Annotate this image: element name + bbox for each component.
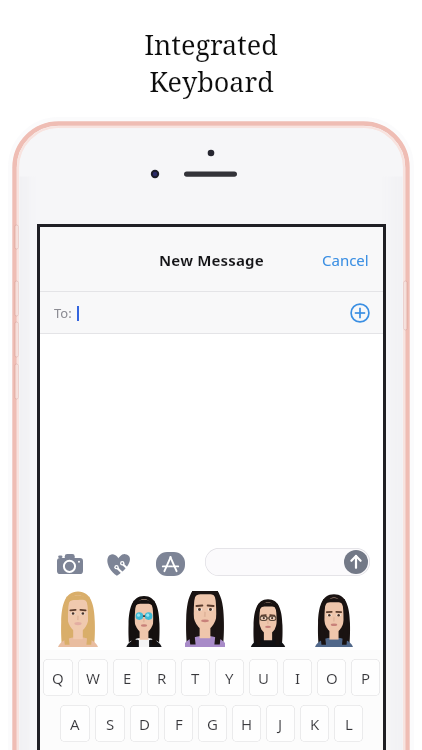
staticText: Integrated <box>144 26 278 63</box>
button[interactable]: E <box>113 659 142 696</box>
button[interactable]: H <box>232 705 261 742</box>
staticText: E <box>123 668 132 688</box>
button[interactable]: Camera <box>57 554 83 574</box>
button[interactable]: L <box>334 705 363 742</box>
staticText: U <box>258 668 269 688</box>
button[interactable]: App Store <box>156 552 185 576</box>
button[interactable] <box>124 591 164 647</box>
button[interactable] <box>248 591 288 647</box>
button[interactable]: Q <box>43 659 73 696</box>
button[interactable] <box>58 591 98 647</box>
button[interactable]: K <box>300 705 329 742</box>
staticText: T <box>191 668 200 688</box>
button[interactable]: Send <box>344 550 368 574</box>
button[interactable]: J <box>266 705 295 742</box>
staticText: H <box>241 714 253 734</box>
button[interactable]: T <box>181 659 210 696</box>
button[interactable]: G <box>198 705 227 742</box>
button[interactable]: U <box>249 659 278 696</box>
staticText: K <box>310 714 320 734</box>
staticText: R <box>157 668 167 688</box>
button[interactable]: I <box>283 659 312 696</box>
staticText: O <box>326 668 338 688</box>
staticText: J <box>278 714 283 734</box>
staticText: A <box>70 714 80 734</box>
button[interactable] <box>185 591 225 647</box>
staticText: Q <box>52 668 64 688</box>
button[interactable]: A <box>60 705 90 742</box>
staticText: New Message <box>159 250 264 270</box>
staticText: P <box>361 668 371 688</box>
button[interactable]: R <box>147 659 176 696</box>
staticText: G <box>207 714 218 734</box>
button[interactable]: W <box>78 659 108 696</box>
button[interactable]: Y <box>215 659 244 696</box>
staticText: W <box>86 668 100 688</box>
staticText: F <box>175 714 183 734</box>
staticText: Cancel <box>322 250 369 270</box>
button[interactable]: Digital Touch <box>106 553 132 576</box>
button[interactable]: Send <box>205 548 370 576</box>
staticText: D <box>139 714 150 734</box>
button[interactable]: Cancel <box>310 244 383 276</box>
button[interactable]: P <box>351 659 380 696</box>
staticText: I <box>295 668 301 688</box>
staticText: To: <box>54 304 72 322</box>
button[interactable] <box>314 591 354 647</box>
button[interactable]: F <box>164 705 193 742</box>
button[interactable]: D <box>130 705 159 742</box>
staticText: Keyboard <box>149 63 274 100</box>
staticText: L <box>345 714 353 734</box>
staticText: S <box>106 714 115 734</box>
button[interactable]: S <box>95 705 125 742</box>
staticText: Y <box>225 668 234 688</box>
button[interactable]: O <box>317 659 346 696</box>
button[interactable]: Add contact <box>350 303 370 323</box>
